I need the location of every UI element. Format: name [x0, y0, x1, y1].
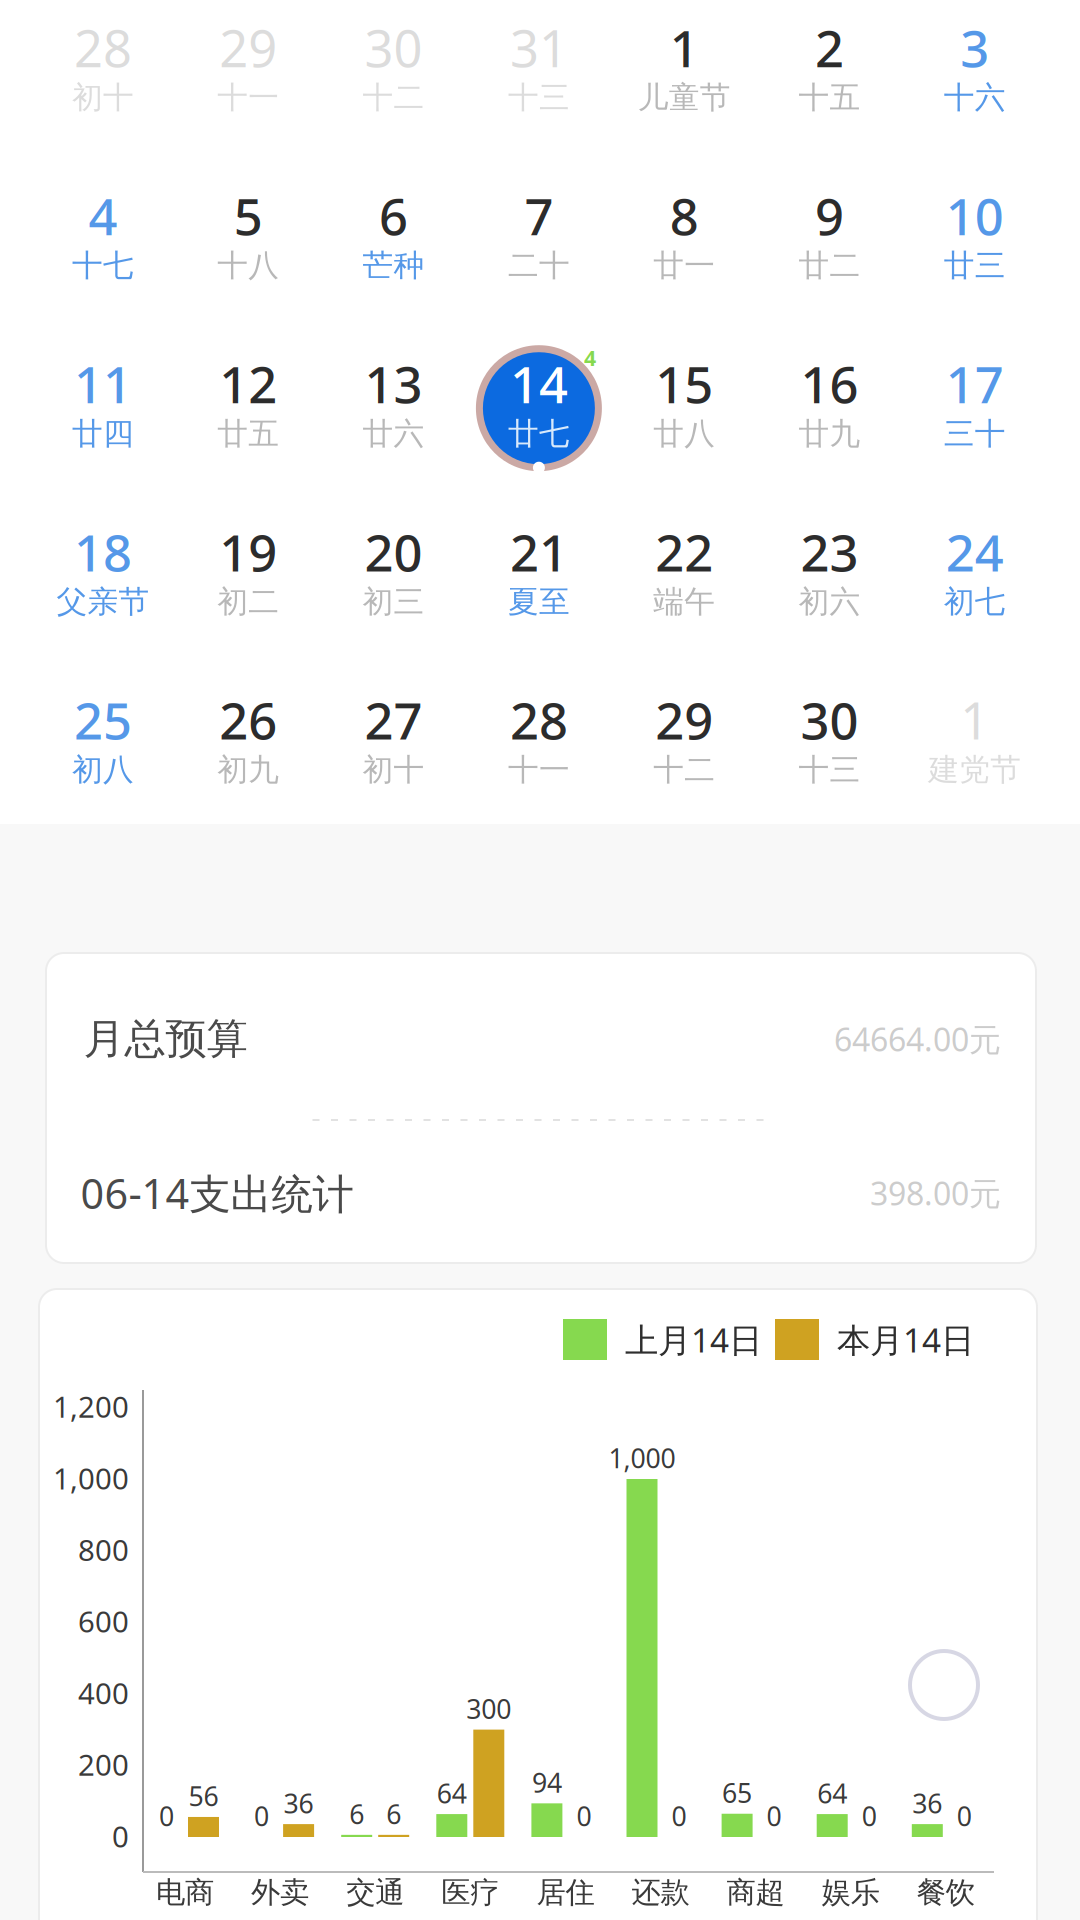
button[interactable]: 29: [612, 661, 757, 829]
staticText: 十一: [217, 79, 279, 116]
button[interactable]: 2: [757, 0, 902, 157]
staticText: 6: [349, 1796, 364, 1831]
button[interactable]: 7: [466, 157, 612, 325]
staticText: 300: [466, 1691, 511, 1726]
staticText: 1,000: [53, 1458, 129, 1497]
button[interactable]: 12: [176, 325, 321, 493]
staticText: 28: [74, 14, 132, 81]
button[interactable]: 14: [466, 325, 612, 493]
button[interactable]: 5: [176, 157, 321, 325]
staticText: 初二: [217, 583, 279, 621]
staticText: 36: [912, 1785, 942, 1821]
button[interactable]: 23: [757, 493, 902, 661]
staticText: 医疗: [441, 1874, 499, 1910]
staticText: 端午: [653, 583, 715, 621]
button[interactable]: 9: [757, 157, 902, 325]
staticText: 16: [800, 350, 858, 417]
button[interactable]: 06-14支出统计: [46, 1116, 1036, 1270]
button[interactable]: 29: [176, 0, 321, 157]
staticText: 十五: [798, 79, 860, 116]
staticText: 十三: [508, 79, 570, 116]
staticText: 22: [655, 518, 713, 585]
button[interactable]: 月总预算: [46, 962, 1036, 1116]
staticText: 94: [532, 1765, 562, 1800]
staticText: 7: [524, 182, 553, 249]
staticText: 23: [800, 518, 858, 585]
staticText: 200: [78, 1745, 129, 1784]
button[interactable]: 21: [466, 493, 612, 661]
staticText: 廿六: [363, 415, 425, 453]
button[interactable]: 6: [321, 157, 466, 325]
button[interactable]: 30: [757, 661, 902, 829]
staticText: 十二: [363, 79, 425, 116]
staticText: 9: [815, 182, 844, 249]
staticText: 1: [960, 686, 989, 754]
staticText: 13: [365, 350, 423, 417]
button[interactable]: 10: [902, 157, 1047, 325]
staticText: 廿九: [798, 415, 860, 453]
staticText: 4: [584, 343, 596, 372]
button[interactable]: 22: [612, 493, 757, 661]
button[interactable]: 11: [30, 325, 176, 493]
staticText: 夏至: [508, 583, 570, 621]
staticText: 十三: [798, 751, 860, 789]
button[interactable]: 4: [30, 157, 176, 325]
staticText: 廿一: [653, 247, 715, 284]
staticText: 5: [234, 182, 263, 249]
staticText: 27: [365, 686, 423, 754]
staticText: 廿三: [944, 247, 1006, 284]
staticText: 十一: [508, 751, 570, 789]
button[interactable]: 17: [902, 325, 1047, 493]
button[interactable]: 28: [30, 0, 176, 157]
staticText: 初八: [72, 751, 134, 789]
staticText: 600: [78, 1602, 129, 1641]
staticText: 21: [510, 518, 568, 585]
button[interactable]: 31: [466, 0, 612, 157]
staticText: 初三: [363, 583, 425, 621]
staticText: 65: [722, 1775, 752, 1810]
staticText: 6: [379, 182, 408, 249]
staticText: 28: [510, 686, 568, 754]
button[interactable]: 26: [176, 661, 321, 829]
staticText: 29: [219, 14, 277, 81]
button[interactable]: 30: [321, 0, 466, 157]
button[interactable]: 1: [902, 661, 1047, 829]
button[interactable]: 1: [612, 0, 757, 157]
staticText: 居住: [536, 1874, 594, 1910]
staticText: 4: [88, 182, 117, 249]
staticText: 廿七: [508, 415, 570, 453]
staticText: 廿四: [72, 415, 134, 453]
staticText: 12: [219, 350, 277, 417]
staticText: 0: [862, 1798, 877, 1834]
staticText: 商超: [727, 1874, 785, 1910]
staticText: 电商: [156, 1874, 214, 1910]
staticText: 30: [365, 14, 423, 81]
staticText: 廿五: [217, 415, 279, 453]
button[interactable]: 18: [30, 493, 176, 661]
button[interactable]: 19: [176, 493, 321, 661]
staticText: 19: [219, 518, 277, 585]
button[interactable]: 24: [902, 493, 1047, 661]
staticText: 64: [437, 1775, 467, 1811]
button[interactable]: 3: [902, 0, 1047, 157]
staticText: 17: [946, 350, 1004, 417]
button[interactable]: 8: [612, 157, 757, 325]
button[interactable]: 13: [321, 325, 466, 493]
button[interactable]: 27: [321, 661, 466, 829]
staticText: 0: [112, 1816, 129, 1855]
button[interactable]: 25: [30, 661, 176, 829]
button[interactable]: 28: [466, 661, 612, 829]
staticText: 外卖: [251, 1874, 309, 1910]
staticText: 十八: [217, 247, 279, 284]
staticText: 400: [78, 1673, 129, 1712]
button[interactable]: 16: [757, 325, 902, 493]
staticText: 初九: [217, 751, 279, 789]
staticText: 0: [767, 1798, 782, 1834]
button[interactable]: 15: [612, 325, 757, 493]
staticText: 3: [960, 14, 989, 81]
staticText: 初七: [944, 583, 1006, 621]
button[interactable]: 20: [321, 493, 466, 661]
staticText: 0: [957, 1798, 972, 1834]
staticText: 64664.00元: [834, 1018, 1001, 1060]
staticText: 25: [74, 686, 132, 754]
